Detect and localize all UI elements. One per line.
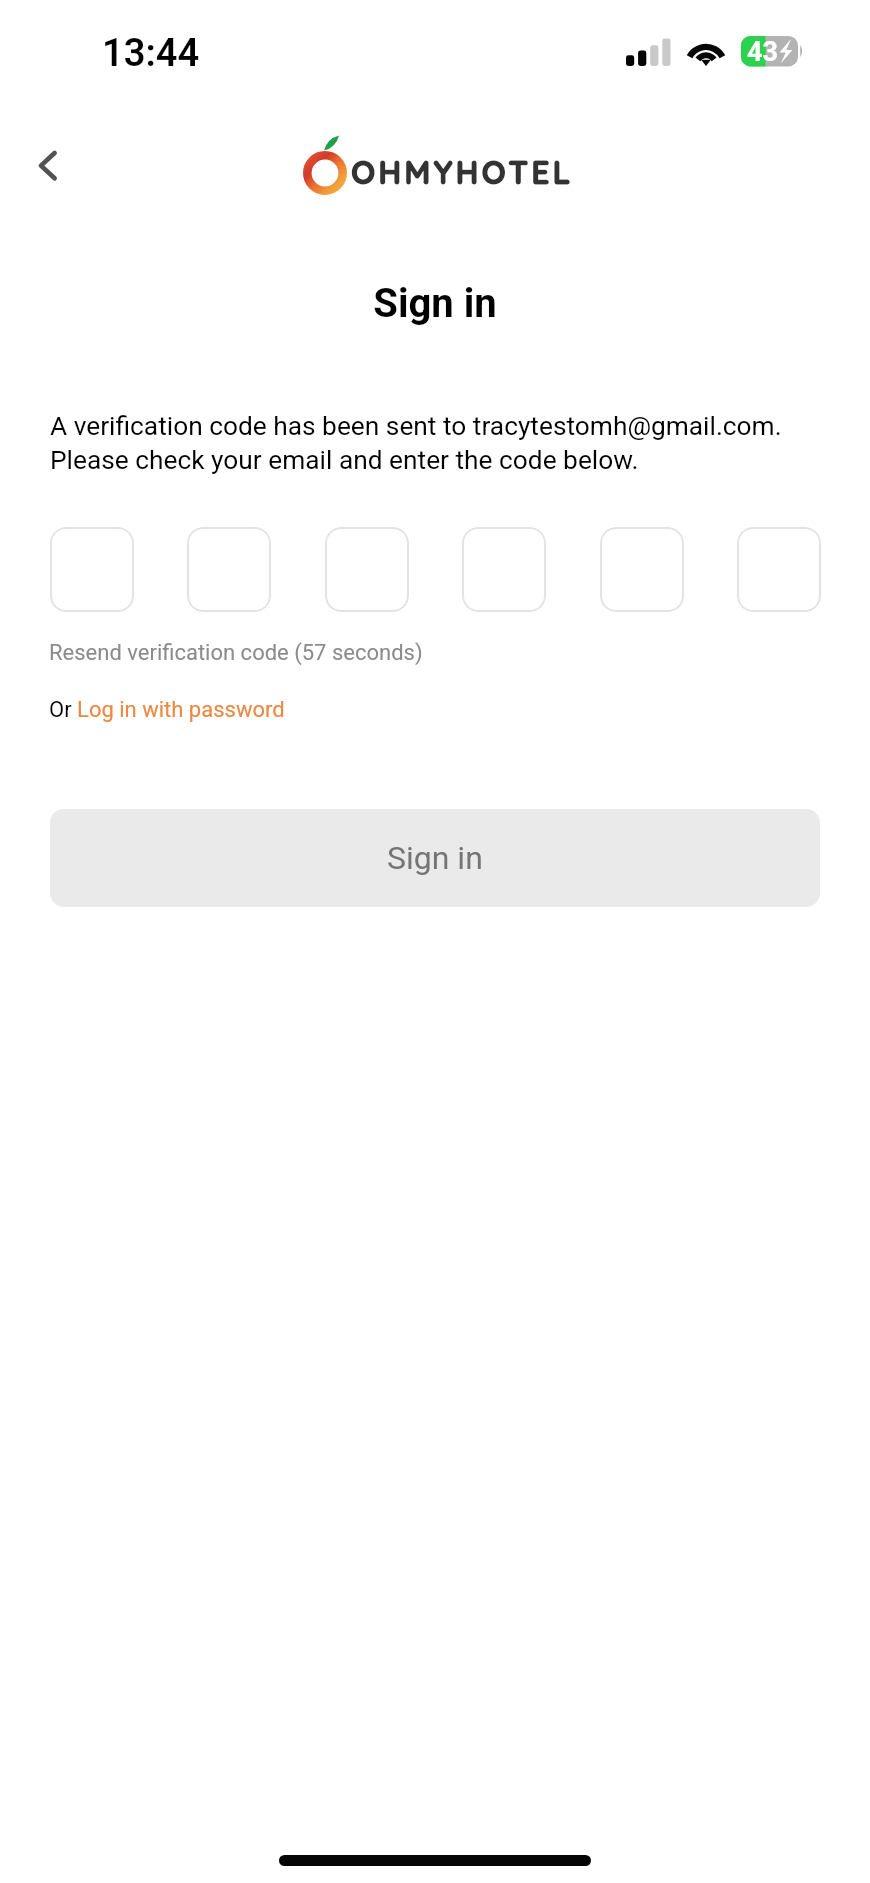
button[interactable]: Or Log in with password (49, 697, 285, 723)
staticText: 13:44 (102, 31, 200, 76)
button[interactable]: Sign in (50, 809, 820, 907)
button[interactable] (737, 527, 821, 612)
button[interactable] (325, 527, 409, 612)
button[interactable] (600, 527, 684, 612)
button[interactable]: Resend verification code (57 seconds) (49, 640, 423, 666)
staticText: OHMYHOTEL (351, 152, 574, 192)
button[interactable] (462, 527, 546, 612)
staticText: A verification code has been sent to tra… (50, 411, 870, 475)
staticText: Sign in (387, 839, 483, 877)
staticText: Sign in (0, 280, 870, 327)
button[interactable] (50, 527, 134, 612)
staticText: 43 (747, 36, 778, 67)
button[interactable]: Back (16, 134, 80, 198)
button[interactable] (187, 527, 271, 612)
